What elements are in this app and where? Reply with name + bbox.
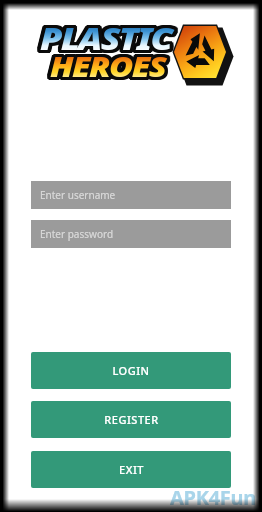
staticText: HEROES: [51, 44, 167, 83]
staticText: HEROES: [53, 44, 170, 83]
staticText: HEROES: [49, 47, 165, 86]
staticText: PLASTIC: [41, 16, 173, 57]
staticText: HEROES: [52, 47, 169, 86]
staticText: PLASTIC: [40, 21, 172, 62]
staticText: REGISTER: [104, 412, 159, 427]
staticText: HEROES: [49, 49, 165, 88]
staticText: HEROES: [48, 46, 164, 85]
button[interactable]: Enter username: [31, 181, 231, 209]
staticText: PLASTIC: [44, 17, 176, 58]
staticText: HEROES: [49, 46, 165, 85]
staticText: HEROES: [52, 46, 169, 85]
staticText: PLASTIC: [36, 18, 168, 59]
staticText: PLASTIC: [44, 18, 176, 59]
staticText: HEROES: [53, 47, 170, 86]
staticText: PLASTIC: [41, 15, 173, 56]
staticText: PLASTIC: [41, 18, 173, 59]
staticText: PLASTIC: [42, 19, 174, 60]
staticText: HEROES: [47, 47, 163, 86]
staticText: PLASTIC: [40, 19, 172, 60]
staticText: PLASTIC: [38, 21, 170, 62]
staticText: PLASTIC: [44, 19, 176, 60]
staticText: Enter username: [40, 188, 116, 202]
staticText: PLASTIC: [38, 18, 170, 59]
staticText: HEROES: [50, 46, 166, 85]
staticText: PLASTIC: [38, 15, 170, 56]
staticText: PLASTIC: [36, 16, 168, 57]
staticText: APK4Fun: [170, 484, 256, 511]
staticText: PLASTIC: [39, 18, 171, 59]
staticText: HEROES: [49, 48, 165, 87]
staticText: HEROES: [50, 46, 166, 85]
staticText: PLASTIC: [40, 17, 172, 58]
staticText: PLASTIC: [41, 21, 173, 62]
staticText: HEROES: [53, 48, 170, 87]
staticText: PLASTIC: [42, 15, 174, 56]
staticText: HEROES: [49, 43, 165, 82]
staticText: HEROES: [53, 46, 170, 85]
staticText: HEROES: [48, 43, 164, 82]
staticText: PLASTIC: [39, 16, 171, 57]
staticText: HEROES: [47, 45, 163, 84]
staticText: PLASTIC: [42, 18, 174, 59]
staticText: HEROES: [48, 44, 164, 83]
staticText: PLASTIC: [38, 16, 170, 57]
staticText: HEROES: [50, 43, 166, 82]
staticText: PLASTIC: [41, 19, 173, 60]
staticText: HEROES: [48, 47, 164, 86]
staticText: PLASTIC: [40, 18, 172, 59]
staticText: PLASTIC: [40, 20, 172, 61]
staticText: PLASTIC: [42, 17, 174, 58]
staticText: PLASTIC: [44, 16, 176, 57]
staticText: HEROES: [51, 43, 167, 82]
button[interactable]: LOGIN: [31, 352, 231, 389]
staticText: PLASTIC: [42, 20, 174, 61]
staticText: HEROES: [47, 46, 163, 85]
staticText: HEROES: [52, 44, 169, 83]
staticText: EXIT: [119, 462, 144, 477]
staticText: HEROES: [52, 49, 169, 88]
staticText: HEROES: [48, 48, 164, 87]
staticText: PLASTIC: [41, 20, 173, 61]
staticText: HEROES: [51, 46, 167, 85]
staticText: HEROES: [51, 48, 167, 87]
staticText: HEROES: [47, 44, 163, 83]
staticText: HEROES: [52, 45, 169, 84]
staticText: PLASTIC: [39, 20, 171, 61]
staticText: PLASTIC: [39, 19, 171, 60]
staticText: PLASTIC: [40, 15, 172, 56]
staticText: HEROES: [51, 47, 167, 86]
staticText: PLASTIC: [36, 20, 168, 61]
staticText: HEROES: [50, 49, 166, 88]
staticText: PLASTIC: [42, 21, 174, 62]
staticText: LOGIN: [112, 363, 150, 378]
staticText: PLASTIC: [40, 18, 172, 59]
staticText: HEROES: [53, 45, 170, 84]
button[interactable]: EXIT: [31, 451, 231, 488]
staticText: HEROES: [49, 44, 165, 83]
staticText: PLASTIC: [39, 15, 171, 56]
staticText: HEROES: [52, 43, 169, 82]
button[interactable]: Enter password: [31, 220, 231, 248]
staticText: HEROES: [52, 48, 169, 87]
staticText: PLASTIC: [38, 19, 170, 60]
staticText: PLASTIC: [38, 20, 170, 61]
staticText: PLASTIC: [39, 21, 171, 62]
staticText: HEROES: [50, 48, 166, 87]
staticText: PLASTIC: [42, 16, 174, 57]
staticText: HEROES: [48, 49, 164, 88]
staticText: HEROES: [51, 49, 167, 88]
staticText: HEROES: [50, 44, 166, 83]
staticText: HEROES: [49, 45, 165, 84]
staticText: HEROES: [51, 45, 167, 84]
staticText: PLASTIC: [36, 19, 168, 60]
staticText: Enter password: [40, 227, 114, 241]
staticText: PLASTIC: [41, 17, 173, 58]
staticText: PLASTIC: [36, 17, 168, 58]
staticText: PLASTIC: [38, 17, 170, 58]
staticText: HEROES: [50, 45, 166, 84]
staticText: HEROES: [50, 47, 166, 86]
button[interactable]: REGISTER: [31, 401, 231, 438]
staticText: PLASTIC: [44, 20, 176, 61]
staticText: HEROES: [47, 48, 163, 87]
